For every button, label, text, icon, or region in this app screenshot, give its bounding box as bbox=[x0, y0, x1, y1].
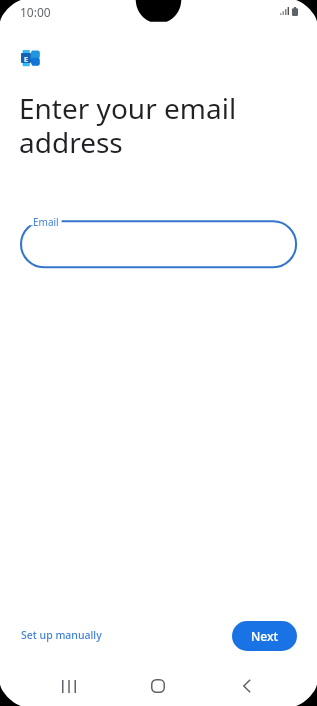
button[interactable]: Back bbox=[225, 668, 269, 704]
button[interactable]: Set up manually bbox=[13, 623, 110, 647]
button[interactable]: Recent apps bbox=[47, 668, 91, 704]
staticText: Next bbox=[251, 628, 279, 644]
button[interactable]: Home bbox=[136, 668, 180, 704]
staticText: 10:00 bbox=[20, 4, 51, 20]
button[interactable]: Next bbox=[232, 621, 297, 651]
staticText: Enter your email address bbox=[19, 89, 237, 161]
staticText: E bbox=[21, 54, 31, 64]
staticText: Email bbox=[33, 215, 59, 229]
button[interactable]: Email bbox=[0, 214, 317, 266]
staticText: Set up manually bbox=[21, 628, 102, 642]
